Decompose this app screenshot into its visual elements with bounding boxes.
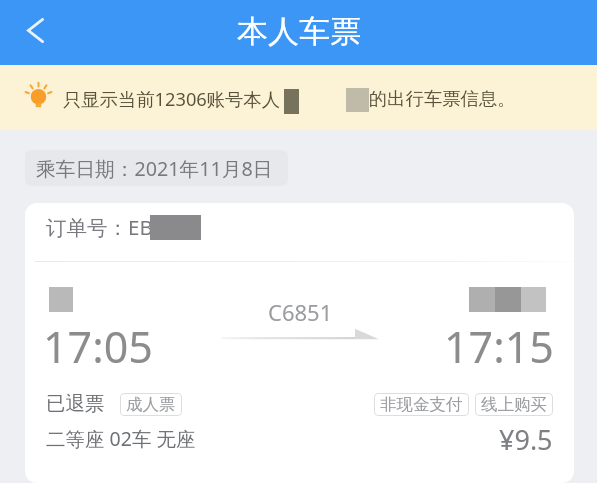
- staticText: 订单号：EB: [46, 213, 153, 241]
- staticText: C6851: [268, 297, 333, 327]
- button[interactable]: 订单号：EB: [25, 203, 574, 483]
- staticText: 线上购买: [481, 394, 547, 415]
- staticText: 二等座 02车 无座: [46, 425, 196, 452]
- staticText: 本人车票: [237, 12, 361, 51]
- staticText: 17:05: [43, 317, 153, 376]
- button[interactable]: Back: [11, 6, 59, 54]
- staticText: 17:15: [444, 317, 554, 376]
- staticText: 的出行车票信息。: [369, 87, 516, 110]
- staticText: 非现金支付: [380, 394, 463, 415]
- staticText: 只显示当前12306账号本人: [63, 86, 281, 111]
- staticText: 乘车日期：2021年11月8日: [36, 155, 273, 182]
- staticText: 成人票: [126, 394, 176, 415]
- staticText: ¥9.5: [499, 421, 553, 453]
- staticText: 已退票: [46, 391, 105, 416]
